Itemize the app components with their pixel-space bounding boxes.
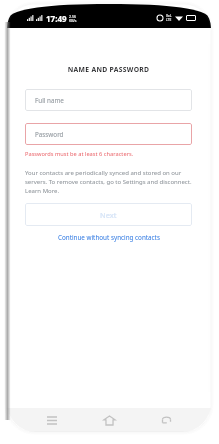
button[interactable]: Full name bbox=[25, 89, 192, 111]
staticText: VoL LTE bbox=[166, 14, 172, 22]
button[interactable]: Next bbox=[25, 203, 192, 226]
button[interactable]: Password bbox=[25, 123, 192, 145]
button[interactable]: Home bbox=[97, 408, 121, 432]
button[interactable]: Back bbox=[154, 408, 178, 432]
staticText: Continue without syncing contacts bbox=[58, 233, 160, 242]
staticText: Full name bbox=[35, 96, 64, 105]
staticText: 2.56 KB/s bbox=[69, 14, 77, 23]
staticText: Your contacts are periodically synced an… bbox=[25, 169, 192, 194]
staticText: Next bbox=[100, 210, 117, 220]
staticText: Password bbox=[35, 130, 64, 139]
staticText: Passwords must be at least 6 characters. bbox=[25, 150, 134, 158]
staticText: NAME AND PASSWORD bbox=[25, 65, 192, 74]
button[interactable]: Continue without syncing contacts bbox=[25, 233, 192, 242]
button[interactable]: Recent apps bbox=[40, 408, 64, 432]
staticText: 17:49 bbox=[46, 13, 67, 24]
